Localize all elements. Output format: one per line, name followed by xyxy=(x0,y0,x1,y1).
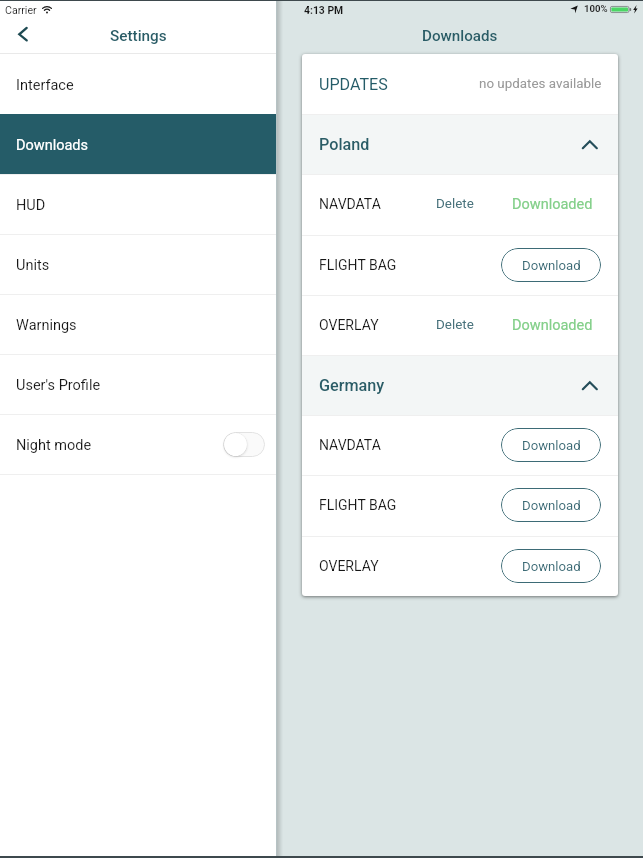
button[interactable]: Germany xyxy=(302,355,618,415)
button[interactable]: Download xyxy=(501,248,601,282)
staticText: Download xyxy=(522,498,581,513)
button[interactable]: Units xyxy=(0,234,276,294)
staticText: UPDATES xyxy=(319,75,388,94)
staticText: Delete xyxy=(436,317,474,333)
staticText: OVERLAY xyxy=(319,558,379,574)
staticText: Download xyxy=(522,438,581,453)
staticText: Warnings xyxy=(16,317,77,334)
staticText: NAVDATA xyxy=(319,437,381,453)
staticText: NAVDATA xyxy=(319,196,381,212)
button[interactable]: Delete xyxy=(420,312,490,338)
button[interactable]: Night mode toggle xyxy=(223,432,265,457)
staticText: Settings xyxy=(110,27,167,45)
staticText: Delete xyxy=(436,196,474,212)
staticText: FLIGHT BAG xyxy=(319,257,397,273)
staticText: OVERLAY xyxy=(319,317,379,333)
staticText: no updates available xyxy=(479,76,602,92)
button[interactable]: User's Profile xyxy=(0,354,276,414)
staticText: User's Profile xyxy=(16,377,101,394)
staticText: Download xyxy=(522,559,581,574)
button[interactable]: Download xyxy=(501,549,601,583)
staticText: Downloads xyxy=(422,27,498,45)
button[interactable]: HUD xyxy=(0,174,276,234)
button[interactable]: Delete xyxy=(420,191,490,217)
button[interactable]: Night mode xyxy=(0,414,276,474)
button[interactable]: Back xyxy=(13,24,35,46)
staticText: Poland xyxy=(319,135,370,154)
staticText: Interface xyxy=(16,77,74,94)
staticText: Downloads xyxy=(16,137,89,154)
staticText: Downloaded xyxy=(512,317,593,334)
button[interactable]: Interface xyxy=(0,54,276,114)
staticText: FLIGHT BAG xyxy=(319,497,397,513)
button[interactable]: Download xyxy=(501,428,601,462)
button[interactable]: Downloads xyxy=(0,114,276,174)
button[interactable]: Warnings xyxy=(0,294,276,354)
staticText: 100% xyxy=(584,3,608,14)
staticText: 4:13 PM xyxy=(304,4,344,16)
staticText: HUD xyxy=(16,197,46,214)
staticText: Units xyxy=(16,257,50,274)
staticText: Downloaded xyxy=(512,196,593,213)
staticText: Download xyxy=(522,258,581,273)
staticText: Carrier xyxy=(5,4,37,16)
staticText: Germany xyxy=(319,376,385,395)
button[interactable]: Download xyxy=(501,488,601,522)
button[interactable]: Poland xyxy=(302,114,618,174)
staticText: Night mode xyxy=(16,437,92,454)
